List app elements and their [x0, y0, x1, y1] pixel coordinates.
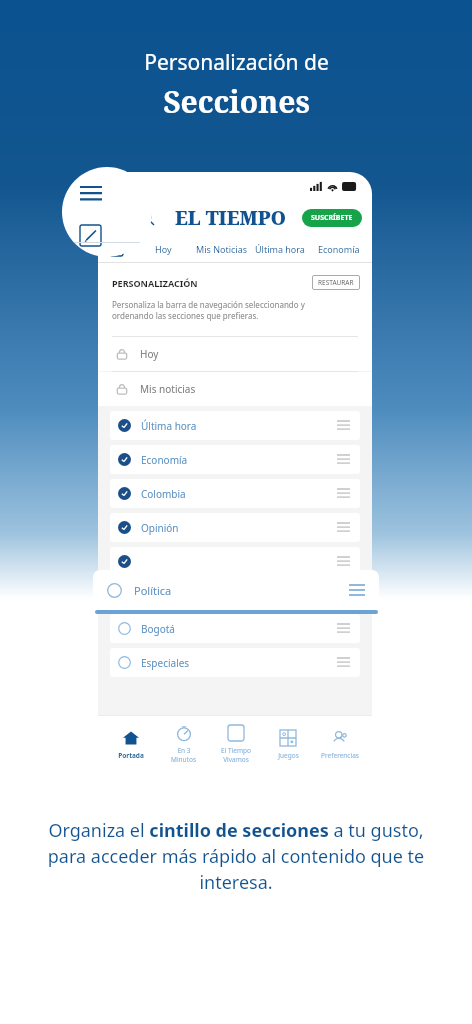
button[interactable]: Especiales: [110, 648, 360, 677]
staticText: Política: [134, 583, 172, 598]
staticText: Última hora: [141, 419, 197, 433]
staticText: Hoy: [155, 243, 172, 255]
button[interactable]: Editar secciones: [80, 223, 104, 247]
button[interactable]: Hoy: [134, 243, 192, 255]
button[interactable]: Menú: [80, 181, 104, 205]
button[interactable]: Colombia: [110, 479, 360, 508]
staticText: RESTAURAR: [318, 278, 354, 287]
staticText: Preferencias: [321, 751, 359, 760]
staticText: Personaliza la barra de navegación selec…: [112, 299, 305, 322]
button[interactable]: Economía: [309, 243, 368, 255]
button[interactable]: Portada: [104, 716, 157, 772]
staticText: Bogotá: [141, 622, 175, 636]
button[interactable]: Juegos: [262, 716, 314, 772]
button[interactable]: El Tiempo: [210, 716, 262, 772]
staticText: SUSCRÍBETE: [311, 213, 353, 223]
staticText: Mis noticias: [140, 382, 196, 396]
staticText: Vivamos: [223, 755, 249, 764]
staticText: Colombia: [141, 487, 186, 501]
staticText: EL TIEMPO: [175, 205, 286, 231]
button[interactable]: SUSCRÍBETE: [302, 209, 362, 227]
staticText: Organiza el cintillo de secciones a tu g…: [34, 818, 438, 895]
button[interactable]: Mis Noticias: [192, 243, 250, 255]
staticText: Opinión: [141, 521, 179, 535]
staticText: Hoy: [140, 347, 159, 361]
staticText: Mis Noticias: [196, 243, 247, 255]
button[interactable]: En 3: [157, 716, 210, 772]
button[interactable]: Política: [93, 570, 379, 610]
staticText: Especiales: [141, 656, 190, 670]
staticText: Economía: [318, 243, 360, 255]
button[interactable]: Opinión: [110, 513, 360, 542]
button[interactable]: Economía: [110, 445, 360, 474]
button[interactable]: Hoy: [98, 337, 372, 371]
button[interactable]: Última hora: [250, 243, 309, 255]
staticText: Personalización de: [144, 48, 329, 77]
staticText: PERSONALIZACIÓN: [112, 277, 198, 289]
button[interactable]: Bogotá: [110, 614, 360, 643]
button[interactable]: Última hora: [110, 411, 360, 440]
staticText: El Tiempo: [221, 746, 251, 755]
staticText: Última hora: [255, 243, 305, 255]
button[interactable]: Preferencias: [314, 716, 366, 772]
staticText: Juegos: [278, 751, 299, 760]
staticText: En 3: [177, 746, 191, 755]
staticText: Portada: [118, 751, 144, 760]
staticText: Secciones: [163, 81, 310, 122]
button[interactable]: Editar secciones: [106, 239, 126, 259]
staticText: Minutos: [171, 755, 196, 764]
button[interactable]: Buscar: [134, 205, 160, 231]
button[interactable]: Mis noticias: [98, 372, 372, 406]
staticText: Economía: [141, 453, 188, 467]
button[interactable]: RESTAURAR: [312, 275, 360, 290]
button[interactable]: [110, 547, 360, 576]
